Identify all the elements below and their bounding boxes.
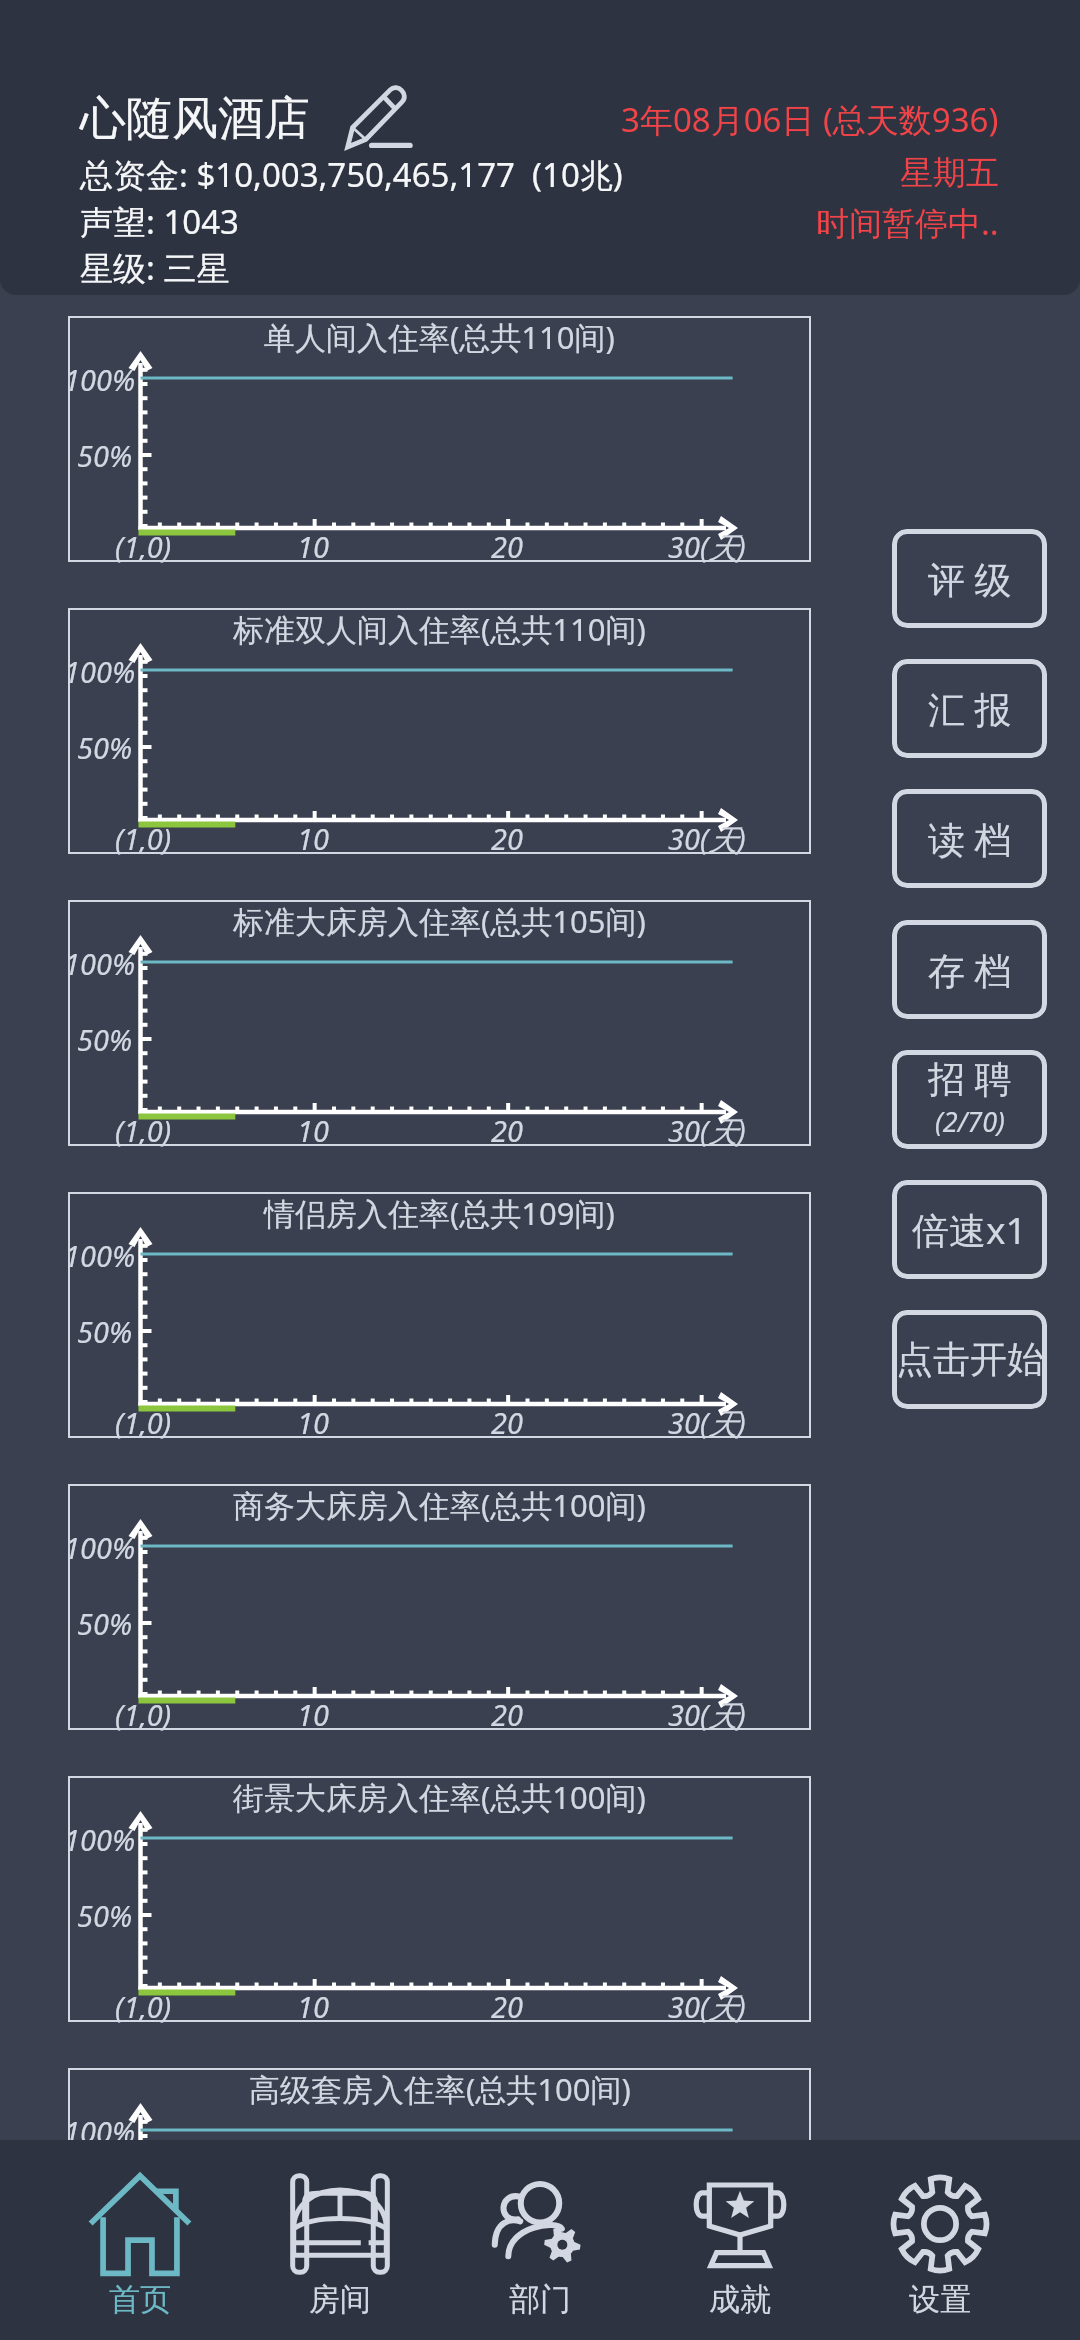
staticText: 50% bbox=[77, 436, 133, 475]
button[interactable]: 存 档 bbox=[892, 920, 1047, 1019]
staticText: 星期五 bbox=[900, 152, 999, 194]
button[interactable]: 读 档 bbox=[892, 789, 1047, 888]
staticText: 50% bbox=[77, 1896, 133, 1935]
staticText: 50% bbox=[77, 1312, 133, 1351]
button[interactable]: 招 聘 bbox=[892, 1050, 1047, 1149]
staticText: (2/70) bbox=[935, 1103, 1005, 1140]
staticText: 设置 bbox=[909, 2280, 971, 2319]
staticText: 20 bbox=[491, 527, 523, 566]
staticText: 标准双人间入住率(总共110间) bbox=[233, 608, 646, 650]
button[interactable]: 重命名酒店 bbox=[344, 84, 410, 150]
staticText: 情侣房入住率(总共109间) bbox=[264, 1192, 615, 1234]
button[interactable]: 房间 bbox=[240, 2140, 440, 2340]
staticText: 评 级 bbox=[928, 553, 1012, 604]
staticText: 20 bbox=[491, 1111, 523, 1150]
staticText: 街景大床房入住率(总共100间) bbox=[233, 1776, 646, 1818]
staticText: 声望: 1043 bbox=[80, 199, 239, 244]
staticText: 20 bbox=[491, 819, 523, 858]
staticText: 部门 bbox=[509, 2280, 571, 2319]
staticText: 50% bbox=[77, 1604, 133, 1643]
staticText: 高级套房入住率(总共100间) bbox=[249, 2068, 631, 2110]
staticText: 成就 bbox=[709, 2280, 771, 2319]
staticText: 100% bbox=[64, 2112, 136, 2140]
staticText: 招 聘 bbox=[928, 1052, 1012, 1103]
button[interactable]: 成就 bbox=[640, 2140, 840, 2340]
staticText: 50% bbox=[77, 728, 133, 767]
button[interactable]: 点击开始 bbox=[892, 1310, 1047, 1409]
staticText: 点击开始 bbox=[896, 1336, 1044, 1383]
staticText: 总资金: $10,003,750,465,177 (10兆) bbox=[80, 152, 623, 197]
staticText: 10 bbox=[297, 819, 329, 858]
staticText: 100% bbox=[64, 652, 136, 691]
staticText: 20 bbox=[491, 1403, 523, 1442]
staticText: 10 bbox=[297, 527, 329, 566]
button[interactable]: 评 级 bbox=[892, 529, 1047, 628]
staticText: (1,0) bbox=[115, 819, 172, 858]
staticText: 10 bbox=[297, 1403, 329, 1442]
staticText: 读 档 bbox=[928, 813, 1012, 864]
staticText: (1,0) bbox=[115, 1403, 172, 1442]
staticText: 30(天) bbox=[668, 1111, 746, 1151]
staticText: 房间 bbox=[309, 2280, 371, 2319]
staticText: (1,0) bbox=[115, 1695, 172, 1734]
staticText: 30(天) bbox=[668, 1403, 746, 1443]
staticText: 存 档 bbox=[928, 944, 1012, 995]
staticText: 20 bbox=[491, 1987, 523, 2026]
staticText: 30(天) bbox=[668, 527, 746, 567]
staticText: 心随风酒店 bbox=[80, 90, 310, 148]
staticText: 20 bbox=[491, 1695, 523, 1734]
staticText: 单人间入住率(总共110间) bbox=[264, 316, 615, 358]
staticText: 倍速x1 bbox=[912, 1204, 1027, 1255]
staticText: 首页 bbox=[109, 2280, 171, 2319]
staticText: 30(天) bbox=[668, 1987, 746, 2027]
staticText: 商务大床房入住率(总共100间) bbox=[233, 1484, 646, 1526]
staticText: 星级: 三星 bbox=[80, 245, 230, 290]
staticText: 10 bbox=[297, 1987, 329, 2026]
staticText: 100% bbox=[64, 1820, 136, 1859]
staticText: 10 bbox=[297, 1111, 329, 1150]
staticText: 100% bbox=[64, 1528, 136, 1567]
button[interactable]: 汇 报 bbox=[892, 659, 1047, 758]
button[interactable]: 首页 bbox=[40, 2140, 240, 2340]
staticText: 时间暂停中.. bbox=[816, 200, 999, 245]
staticText: 汇 报 bbox=[928, 683, 1012, 734]
button[interactable]: 部门 bbox=[440, 2140, 640, 2340]
button[interactable]: 倍速x1 bbox=[892, 1180, 1047, 1279]
staticText: 30(天) bbox=[668, 819, 746, 859]
staticText: 10 bbox=[297, 1695, 329, 1734]
staticText: 100% bbox=[64, 360, 136, 399]
button[interactable]: 设置 bbox=[840, 2140, 1040, 2340]
staticText: 3年08月06日 (总天数936) bbox=[621, 97, 999, 142]
staticText: (1,0) bbox=[115, 1111, 172, 1150]
staticText: (1,0) bbox=[115, 527, 172, 566]
staticText: 30(天) bbox=[668, 1695, 746, 1735]
staticText: 标准大床房入住率(总共105间) bbox=[233, 900, 646, 942]
staticText: 50% bbox=[77, 1020, 133, 1059]
staticText: 100% bbox=[64, 1236, 136, 1275]
staticText: (1,0) bbox=[115, 1987, 172, 2026]
staticText: 100% bbox=[64, 944, 136, 983]
